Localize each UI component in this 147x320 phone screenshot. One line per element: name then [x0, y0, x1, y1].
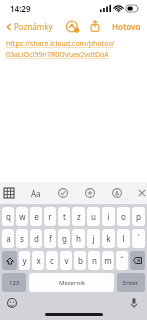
button[interactable]: Hotovo [110, 21, 143, 32]
button[interactable]: Mezerník [29, 273, 114, 292]
button[interactable]: v [60, 251, 72, 270]
staticText: n [92, 255, 97, 266]
staticText: m [104, 255, 112, 266]
button[interactable]: p [132, 207, 145, 226]
staticText: s [20, 233, 24, 244]
button[interactable]: Poznámky [4, 21, 53, 32]
button[interactable]: x [32, 251, 44, 270]
staticText: h [76, 233, 81, 244]
staticText: a [6, 233, 11, 244]
staticText: d [34, 233, 39, 244]
button[interactable]: l [117, 229, 130, 248]
staticText: w [19, 211, 26, 222]
button[interactable]: z [72, 207, 85, 226]
button[interactable]: e [30, 207, 42, 226]
staticText: f [49, 233, 52, 244]
button[interactable]: Diktovat [127, 296, 141, 310]
button[interactable]: g [58, 229, 70, 248]
staticText: x [36, 255, 41, 266]
button[interactable]: y [19, 251, 30, 270]
staticText: g [62, 233, 67, 244]
button[interactable]: Aa [27, 184, 45, 202]
button[interactable]: Enter [117, 273, 145, 292]
staticText: p [136, 211, 141, 222]
staticText: ´ [137, 233, 140, 244]
button[interactable]: ´ [132, 229, 145, 248]
staticText: https://share.icloud.com/photos/ [6, 39, 115, 49]
button[interactable]: Spolupráce [64, 18, 80, 34]
staticText: Aa [31, 188, 41, 199]
button[interactable]: j [87, 229, 100, 248]
button[interactable]: Přidat [81, 184, 99, 202]
button[interactable]: Zaškrtnout [54, 184, 72, 202]
staticText: t [63, 211, 66, 222]
button[interactable]: o [117, 207, 130, 226]
staticText: ˇ [120, 255, 124, 266]
button[interactable]: u [87, 207, 100, 226]
staticText: k [106, 233, 111, 244]
button[interactable]: Shift [2, 251, 17, 270]
staticText: Hotovo [112, 21, 141, 32]
staticText: l [122, 233, 125, 244]
button[interactable]: d [30, 229, 42, 248]
staticText: y [22, 255, 27, 266]
button[interactable]: ˇ [116, 251, 128, 270]
staticText: 14:29 [10, 3, 31, 14]
staticText: Poznámky [14, 21, 53, 32]
staticText: q [6, 211, 11, 222]
staticText: 03aLiOcI99n7R0OVuev2vdtDoA [6, 50, 109, 60]
button[interactable]: a [2, 229, 14, 248]
button[interactable]: c [46, 251, 58, 270]
button[interactable]: m [102, 251, 114, 270]
button[interactable]: i [102, 207, 115, 226]
staticText: e [34, 211, 39, 222]
staticText: v [64, 255, 69, 266]
staticText: Enter [123, 279, 139, 287]
staticText: b [78, 255, 83, 266]
button[interactable]: Tabulka [0, 184, 18, 202]
button[interactable]: Emoji [5, 296, 19, 310]
staticText: z [77, 211, 81, 222]
button[interactable]: Kreslení [108, 184, 126, 202]
staticText: j [92, 233, 95, 244]
staticText: o [121, 211, 126, 222]
button[interactable]: q [2, 207, 14, 226]
staticText: Mezerník [59, 279, 85, 287]
button[interactable]: b [74, 251, 86, 270]
staticText: r [48, 211, 52, 222]
button[interactable]: Smazat [130, 251, 145, 270]
button[interactable]: Sdílet [87, 18, 103, 34]
staticText: 123 [9, 279, 20, 287]
button[interactable]: h [72, 229, 85, 248]
staticText: c [50, 255, 54, 266]
button[interactable]: f [44, 229, 56, 248]
button[interactable]: t [58, 207, 70, 226]
button[interactable]: r [44, 207, 56, 226]
staticText: u [91, 211, 96, 222]
button[interactable]: s [16, 229, 28, 248]
button[interactable]: n [88, 251, 100, 270]
staticText: i [107, 211, 110, 222]
button[interactable]: Zavřít [137, 184, 147, 202]
button[interactable]: w [16, 207, 28, 226]
button[interactable]: k [102, 229, 115, 248]
button[interactable]: 123 [2, 273, 26, 292]
